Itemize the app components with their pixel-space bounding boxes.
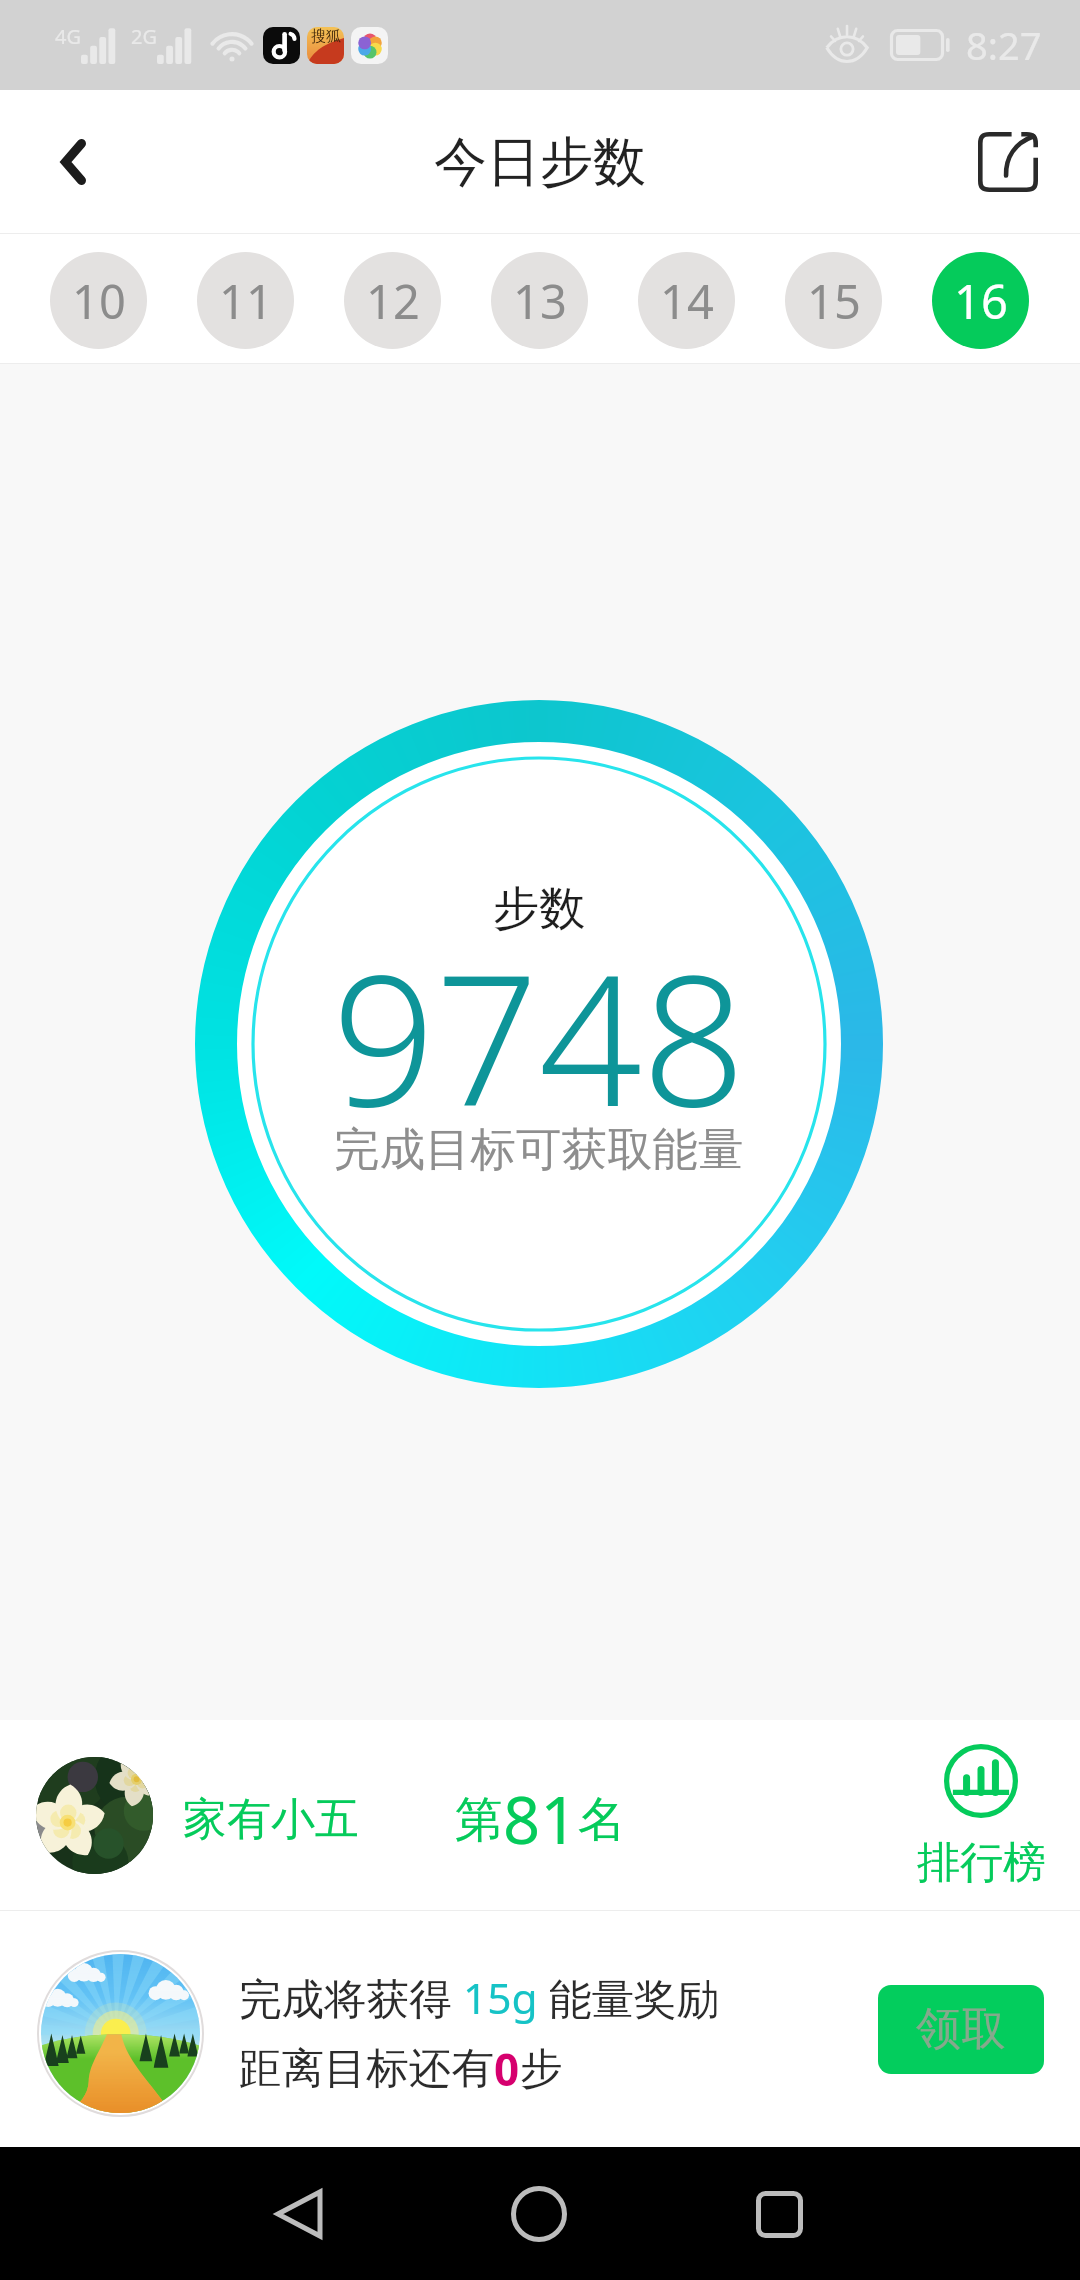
staticText: 15g [463, 1969, 538, 2027]
button[interactable]: Share [958, 112, 1058, 212]
staticText: 步数 [493, 880, 585, 938]
button[interactable]: Recents [724, 2159, 834, 2269]
staticText: 12 [366, 269, 420, 333]
staticText: 11 [219, 269, 273, 333]
staticText: 能量奖励 [538, 1969, 720, 2027]
staticText: 2G [131, 23, 157, 50]
staticText: 今日步数 [434, 129, 646, 196]
staticText: 0 [494, 2039, 520, 2099]
button[interactable]: 13 [491, 252, 588, 349]
staticText: 13 [513, 269, 567, 333]
staticText: 8:27 [966, 19, 1042, 71]
button[interactable]: 16 [932, 252, 1029, 349]
button[interactable]: Back [20, 112, 120, 212]
button[interactable]: 家有小五 [0, 1720, 1080, 1910]
button[interactable]: 领取 [878, 1985, 1044, 2074]
staticText: 完成目标可获取能量 [334, 1121, 744, 1178]
button[interactable]: 排行榜 [906, 1744, 1056, 1890]
button[interactable] [0, 1911, 860, 2147]
staticText: 家有小五 [183, 1792, 359, 1847]
button[interactable]: Back [244, 2159, 354, 2269]
staticText: 15 [807, 269, 861, 333]
staticText: 完成将获得 [239, 1969, 463, 2027]
button[interactable]: 10 [50, 252, 147, 349]
staticText: 16 [954, 269, 1008, 333]
staticText: 领取 [916, 2001, 1006, 2058]
button[interactable]: 11 [197, 252, 294, 349]
button[interactable]: 15 [785, 252, 882, 349]
staticText: 搜狐 [311, 27, 341, 46]
staticText: 距离目标还有 [239, 2042, 494, 2096]
staticText: 4G [55, 23, 81, 50]
button[interactable]: Home [484, 2159, 594, 2269]
button[interactable]: 12 [344, 252, 441, 349]
staticText: 第 [455, 1790, 503, 1850]
button[interactable]: 14 [638, 252, 735, 349]
staticText: 名 [578, 1790, 626, 1850]
staticText: 81 [503, 1775, 578, 1864]
staticText: 14 [660, 269, 714, 333]
staticText: 步 [520, 2042, 563, 2096]
staticText: 10 [72, 269, 126, 333]
staticText: 排行榜 [917, 1836, 1046, 1890]
staticText: 9748 [332, 913, 746, 1160]
